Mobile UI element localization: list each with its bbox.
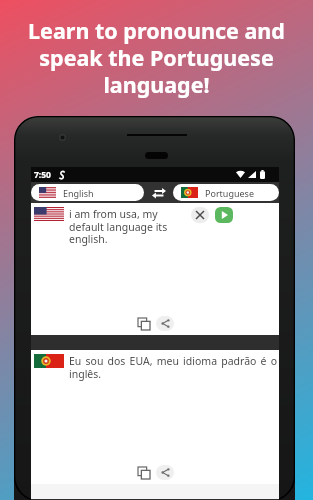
staticText: i am from usa, my default language its e… [69,207,173,246]
button[interactable]: Close [191,207,209,223]
staticText: Eu sou dos EUA, meu idioma padrão é o in… [69,354,277,381]
button[interactable]: Share [156,465,174,480]
staticText: Learn to pronounce and speak the Portugu… [12,16,301,99]
button[interactable]: Portuguese [173,184,279,201]
button[interactable]: Copy [136,316,151,331]
staticText: 7:50 [34,169,51,181]
staticText: Portuguese [205,187,254,199]
button[interactable]: Swap languages [148,182,169,203]
button[interactable]: Copy [136,465,151,480]
button[interactable]: English [31,184,144,201]
button[interactable]: Play [215,207,233,223]
button[interactable]: Share [156,316,174,331]
staticText: English [63,187,94,199]
